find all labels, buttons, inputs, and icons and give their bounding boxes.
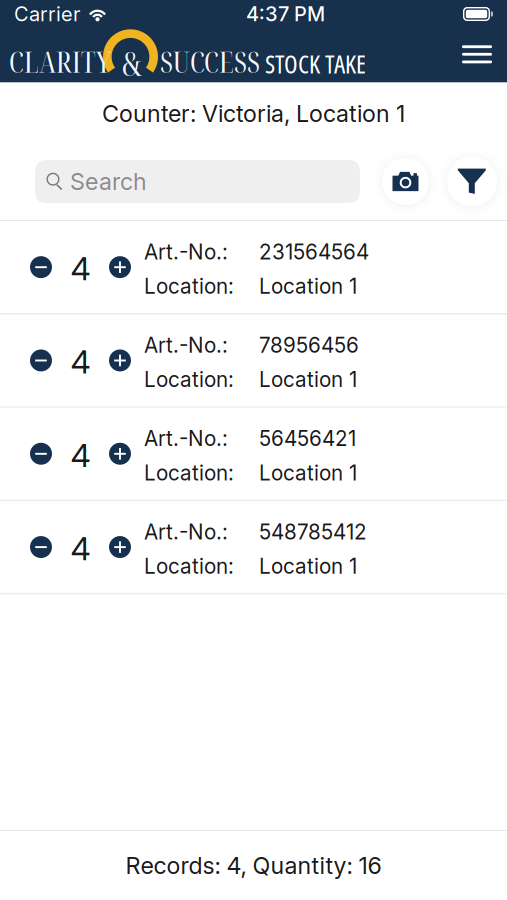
button[interactable]: Decrease quantity — [19, 236, 63, 298]
button[interactable]: Scan barcode — [382, 158, 429, 205]
staticText: Counter: Victoria, Location 1 — [102, 99, 405, 128]
staticText: STOCK TAKE — [265, 46, 366, 81]
staticText: 4 — [70, 249, 90, 288]
staticText: Location: — [144, 460, 234, 485]
staticText: Art.-No.: — [144, 239, 228, 264]
staticText: Carrier — [14, 2, 80, 26]
staticText: CLARITY — [9, 41, 111, 81]
button[interactable]: Decrease quantity — [19, 423, 63, 485]
button[interactable]: Menu — [449, 26, 505, 82]
staticText: Search — [70, 167, 147, 196]
staticText: 548785412 — [259, 519, 367, 544]
button[interactable]: Increase quantity — [98, 516, 142, 578]
button[interactable]: Filter — [447, 156, 497, 206]
staticText: 56456421 — [259, 426, 356, 451]
button[interactable]: Decrease quantity — [19, 329, 63, 391]
button[interactable]: Increase quantity — [98, 236, 142, 298]
button[interactable]: Increase quantity — [98, 329, 142, 391]
staticText: & — [122, 40, 142, 86]
button[interactable]: Decrease quantity — [19, 516, 63, 578]
staticText: 4:37 PM — [246, 2, 325, 26]
staticText: 78956456 — [259, 333, 359, 358]
button[interactable]: 4 — [0, 501, 507, 593]
staticText: Location: — [144, 367, 234, 392]
staticText: Location: — [144, 274, 234, 299]
staticText: Location 1 — [259, 554, 357, 579]
staticText: SUCCESS — [160, 41, 260, 81]
staticText: Location 1 — [259, 367, 357, 392]
staticText: Art.-No.: — [144, 519, 228, 544]
staticText: Records: 4, Quantity: 16 — [125, 851, 381, 880]
staticText: Location 1 — [259, 460, 357, 485]
button[interactable]: 4 — [0, 221, 507, 313]
staticText: Art.-No.: — [144, 333, 228, 358]
staticText: Location: — [144, 554, 234, 579]
staticText: 4 — [70, 436, 90, 475]
staticText: 4 — [70, 529, 90, 568]
button[interactable]: Increase quantity — [98, 423, 142, 485]
staticText: 231564564 — [259, 239, 369, 264]
staticText: 4 — [70, 343, 90, 381]
staticText: Art.-No.: — [144, 426, 228, 451]
button[interactable]: 4 — [0, 408, 507, 500]
staticText: Location 1 — [259, 274, 357, 299]
button[interactable]: 4 — [0, 314, 507, 407]
